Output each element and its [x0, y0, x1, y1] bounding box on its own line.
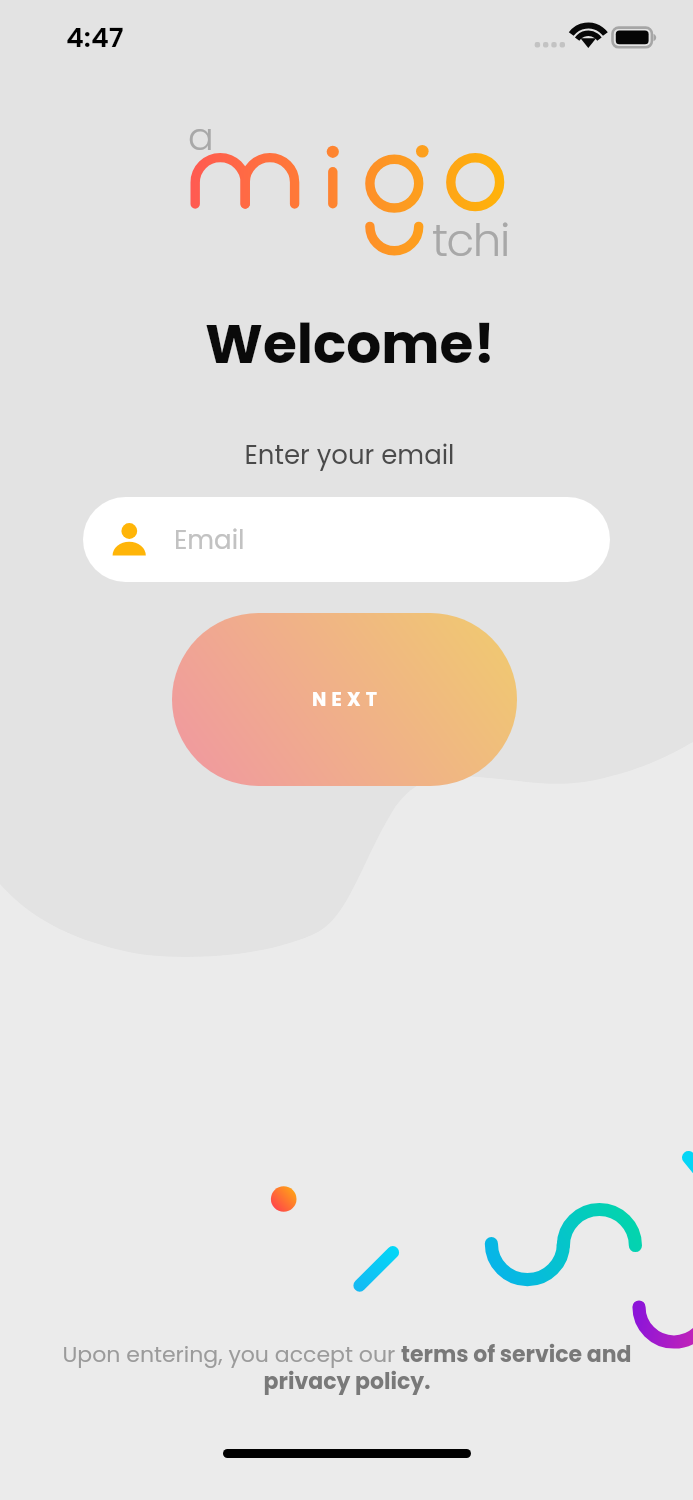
staticText: tchi — [432, 209, 509, 272]
other: Home indicator — [223, 1449, 471, 1458]
button[interactable]: Upon entering, you accept our terms of s… — [47, 1339, 647, 1396]
staticText: Email — [174, 522, 245, 558]
staticText: 4:47 — [66, 19, 124, 57]
staticText: NEXT — [312, 686, 383, 713]
staticText: Enter your email — [244, 437, 455, 473]
button[interactable]: NEXT — [172, 613, 517, 786]
staticText: a — [188, 110, 214, 163]
button[interactable]: Email — [83, 497, 610, 582]
staticText: Welcome! — [205, 305, 495, 382]
